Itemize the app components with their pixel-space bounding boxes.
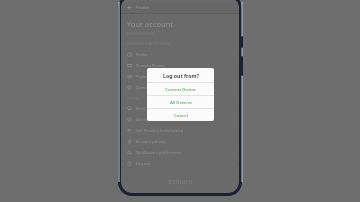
button[interactable]: Cancel bbox=[147, 109, 214, 121]
button[interactable]: Back bbox=[126, 4, 133, 11]
staticText: Payment settings bbox=[136, 74, 169, 79]
button[interactable]: About us bbox=[121, 114, 239, 125]
staticText: Log out from? bbox=[163, 72, 199, 79]
staticText: Notification preferences bbox=[136, 150, 182, 155]
staticText: zomato bbox=[168, 177, 193, 186]
staticText: PAYMENTS AND COUPONS bbox=[127, 41, 170, 46]
staticText: Get Feeding India hosted bbox=[136, 128, 184, 133]
staticText: Account privacy bbox=[136, 139, 166, 144]
button[interactable]: Payment settings bbox=[121, 71, 239, 82]
button[interactable]: Zomato Money bbox=[121, 60, 239, 71]
button[interactable]: Current Device bbox=[147, 83, 214, 95]
staticText: All Devices bbox=[170, 99, 192, 105]
staticText: Zomato credits bbox=[136, 85, 165, 90]
staticText: Log out bbox=[136, 161, 151, 166]
staticText: Zomato Money bbox=[136, 63, 165, 68]
button[interactable]: Account privacy bbox=[121, 136, 239, 147]
staticText: Wallet bbox=[136, 52, 148, 57]
staticText: Your account bbox=[127, 19, 174, 29]
button[interactable]: Notification preferences bbox=[121, 147, 239, 158]
button[interactable]: Zomato credits bbox=[121, 82, 239, 93]
staticText: OTHER bbox=[127, 96, 139, 101]
button[interactable]: Back bbox=[121, 2, 239, 13]
button[interactable]: All Devices bbox=[147, 96, 214, 108]
staticText: Send feedback bbox=[136, 106, 164, 111]
staticText: Cancel bbox=[174, 112, 188, 118]
staticText: About us bbox=[136, 117, 153, 122]
button[interactable]: Send feedback bbox=[121, 103, 239, 114]
staticText: Profile bbox=[136, 5, 149, 11]
button[interactable]: Get Feeding India hosted bbox=[121, 125, 239, 136]
staticText: Current Device bbox=[165, 86, 196, 92]
